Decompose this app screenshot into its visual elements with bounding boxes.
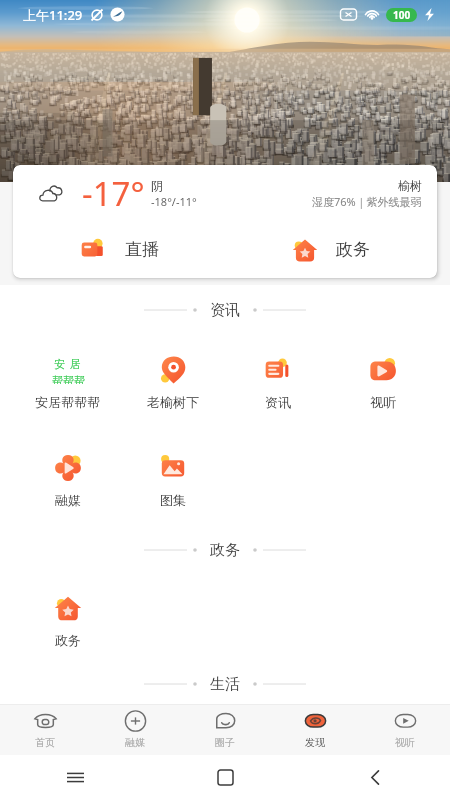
button[interactable]: 政务 bbox=[225, 221, 437, 278]
staticText: -17° bbox=[82, 171, 145, 216]
staticText: 直播 bbox=[125, 239, 159, 260]
staticText: 安 居 bbox=[54, 356, 82, 371]
staticText: 政务 bbox=[55, 632, 81, 648]
staticText: 资讯 bbox=[265, 394, 291, 410]
staticText: -18°/-11° bbox=[151, 194, 197, 209]
staticText: 圈子 bbox=[215, 736, 235, 749]
button[interactable]: 圈子 bbox=[180, 705, 270, 755]
button[interactable]: 安 居 bbox=[15, 356, 120, 410]
staticText: 发现 bbox=[305, 736, 325, 749]
button[interactable]: 融媒 bbox=[15, 454, 120, 508]
button[interactable]: 融媒 bbox=[90, 705, 180, 755]
staticText: 生活 bbox=[210, 675, 240, 694]
button[interactable]: 政务 bbox=[15, 594, 120, 648]
button[interactable]: 老榆树下 bbox=[120, 356, 225, 410]
staticText: 视听 bbox=[395, 736, 415, 749]
staticText: 融媒 bbox=[55, 492, 81, 508]
button[interactable]: 首页 bbox=[0, 705, 90, 755]
button[interactable]: 发现 bbox=[270, 705, 360, 755]
staticText: 100 bbox=[393, 8, 411, 22]
staticText: 政务 bbox=[210, 541, 240, 560]
button[interactable]: 视听 bbox=[360, 705, 450, 755]
staticText: 帮帮帮 bbox=[52, 374, 85, 384]
staticText: 老榆树下 bbox=[147, 394, 199, 410]
staticText: 图集 bbox=[160, 492, 186, 508]
button[interactable]: 图集 bbox=[120, 454, 225, 508]
button[interactable]: Home bbox=[218, 770, 233, 785]
staticText: 资讯 bbox=[210, 301, 240, 320]
staticText: 政务 bbox=[336, 239, 370, 260]
button[interactable]: Back bbox=[368, 770, 383, 785]
staticText: 首页 bbox=[35, 736, 55, 749]
staticText: 视听 bbox=[370, 394, 396, 410]
button[interactable]: 直播 bbox=[13, 221, 225, 278]
button[interactable]: Recent apps bbox=[67, 769, 84, 786]
staticText: 湿度76%｜紫外线最弱 bbox=[312, 194, 422, 209]
staticText: 融媒 bbox=[125, 736, 145, 749]
staticText: 阴 bbox=[151, 178, 163, 193]
staticText: 上午11:29 bbox=[23, 6, 83, 24]
staticText: 榆树 bbox=[398, 178, 422, 193]
button[interactable]: 视听 bbox=[330, 356, 435, 410]
button[interactable]: 资讯 bbox=[225, 356, 330, 410]
staticText: 安居帮帮帮 bbox=[35, 394, 100, 410]
